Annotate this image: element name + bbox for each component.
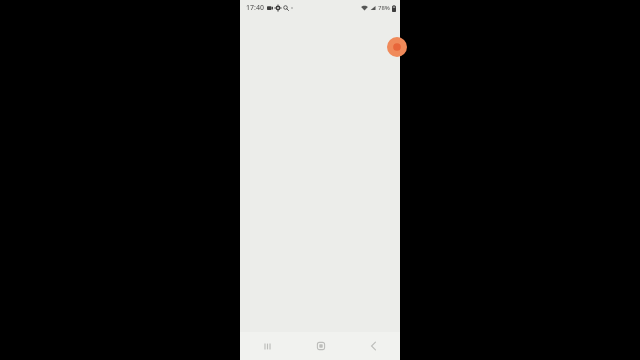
button[interactable]: Recent apps (240, 332, 294, 360)
button[interactable]: Home (294, 332, 347, 360)
button[interactable]: Back (347, 332, 400, 360)
staticText: 17:40 (246, 3, 264, 13)
button[interactable]: Notification badge (387, 37, 407, 57)
staticText: 78% (378, 4, 390, 12)
